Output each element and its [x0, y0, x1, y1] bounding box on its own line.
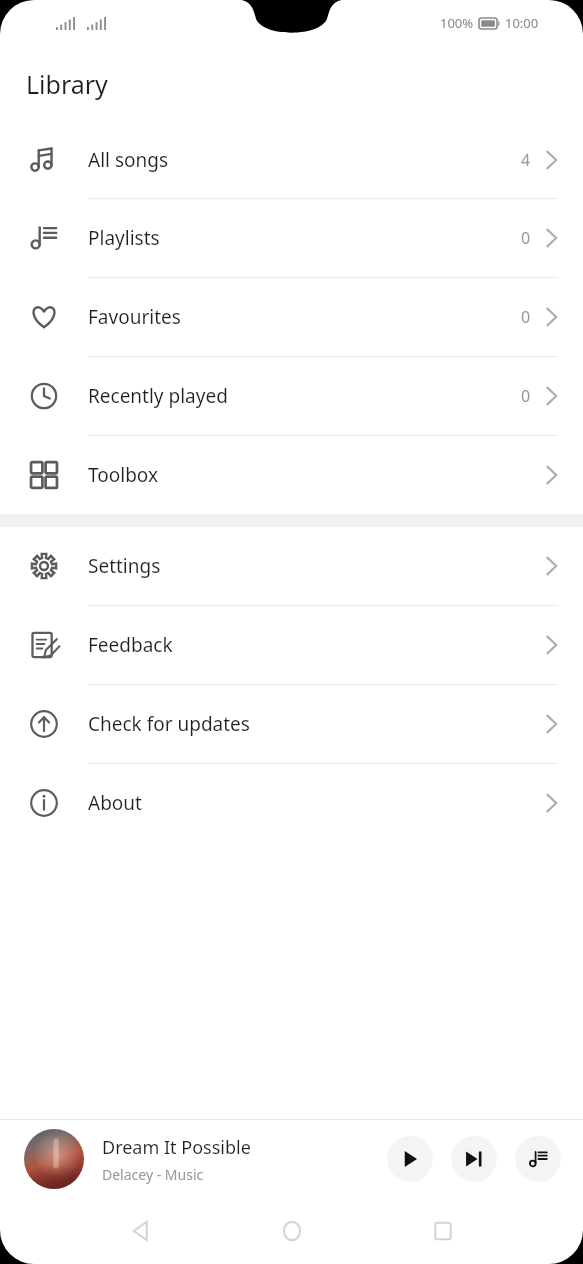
button[interactable]: Toolbox [0, 436, 583, 514]
button[interactable]: Playlists [0, 199, 583, 277]
button[interactable]: Next [451, 1136, 497, 1182]
staticText: 0 [521, 385, 531, 407]
button[interactable]: Settings [0, 527, 583, 605]
staticText: 0 [521, 227, 531, 249]
button[interactable]: Feedback [0, 606, 583, 684]
staticText: Check for updates [88, 711, 250, 737]
staticText: Library [26, 67, 108, 101]
button[interactable]: Recents [415, 1203, 471, 1259]
staticText: About [88, 790, 142, 816]
staticText: Delacey - Music [102, 1165, 204, 1184]
button[interactable]: Recently played [0, 357, 583, 435]
staticText: Recently played [88, 383, 228, 409]
button[interactable]: Check for updates [0, 685, 583, 763]
button[interactable]: Favourites [0, 278, 583, 356]
staticText: 100% [440, 14, 474, 32]
staticText: Settings [88, 553, 161, 579]
button[interactable]: Home [264, 1203, 320, 1259]
button[interactable]: About [0, 764, 583, 842]
staticText: 4 [521, 149, 531, 171]
button[interactable]: Back [113, 1203, 169, 1259]
staticText: Toolbox [88, 462, 158, 488]
button[interactable]: Dream It Possible [0, 1120, 583, 1198]
button[interactable]: Play [387, 1136, 433, 1182]
staticText: All songs [88, 147, 169, 173]
staticText: Feedback [88, 632, 173, 658]
staticText: 10:00 [505, 14, 539, 32]
button[interactable]: All songs [0, 121, 583, 198]
button[interactable]: Playing queue [515, 1136, 561, 1182]
staticText: Dream It Possible [102, 1135, 251, 1160]
staticText: Favourites [88, 304, 181, 330]
staticText: Playlists [88, 225, 160, 251]
staticText: 0 [521, 306, 531, 328]
